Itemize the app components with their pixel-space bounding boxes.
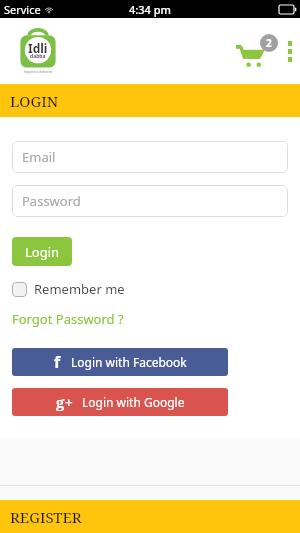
staticText: LOGIN bbox=[10, 91, 59, 111]
staticText: Login with Google bbox=[82, 394, 185, 410]
staticText: Idli bbox=[28, 40, 48, 56]
button[interactable]: Remember me bbox=[12, 280, 125, 298]
staticText: 2 bbox=[266, 36, 272, 50]
button[interactable]: Login bbox=[12, 237, 72, 266]
button[interactable]: Email bbox=[12, 141, 288, 173]
staticText: Email bbox=[22, 148, 56, 166]
staticText: dabba bbox=[30, 53, 46, 60]
staticText: g+ bbox=[56, 392, 73, 412]
staticText: happiness delivered bbox=[24, 70, 53, 74]
staticText: Service bbox=[4, 2, 41, 17]
button[interactable]: Idli dabba home bbox=[18, 28, 58, 74]
staticText: Password bbox=[22, 192, 81, 210]
button[interactable]: Forgot Password ? bbox=[12, 310, 124, 328]
button[interactable]: g+ bbox=[12, 388, 228, 416]
staticText: Remember me bbox=[34, 280, 125, 298]
button[interactable]: More options bbox=[283, 38, 297, 64]
staticText: Login bbox=[25, 243, 60, 261]
button[interactable]: Password bbox=[12, 185, 288, 217]
button[interactable]: Cart, 2 items bbox=[236, 34, 278, 68]
button[interactable]: f bbox=[12, 348, 228, 376]
button[interactable]: LOGIN bbox=[0, 84, 300, 117]
button[interactable]: REGISTER bbox=[0, 500, 300, 533]
staticText: Login with Facebook bbox=[71, 354, 187, 370]
staticText: 4:34 pm bbox=[129, 2, 171, 17]
staticText: f bbox=[54, 351, 61, 373]
staticText: REGISTER bbox=[10, 507, 82, 527]
